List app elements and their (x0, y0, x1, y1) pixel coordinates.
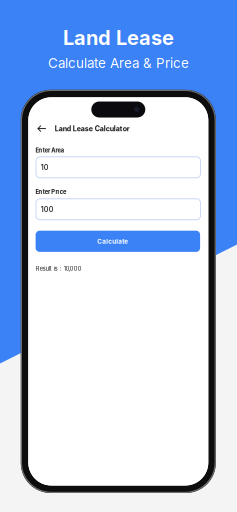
button[interactable]: Land Lease Calculator (37, 122, 187, 135)
staticText: Land Lease Calculator (55, 124, 130, 133)
staticText: 10 (41, 163, 49, 172)
staticText: Enter Area (35, 147, 64, 154)
staticText: Enter Price (35, 188, 66, 195)
staticText: Land Lease (63, 25, 174, 50)
staticText: Calculate (97, 237, 128, 245)
button[interactable]: Calculate (36, 231, 200, 252)
staticText: Calculate Area & Price (48, 55, 189, 71)
staticText: 100 (41, 205, 54, 214)
staticText: Result is : 10,000 (36, 265, 82, 272)
